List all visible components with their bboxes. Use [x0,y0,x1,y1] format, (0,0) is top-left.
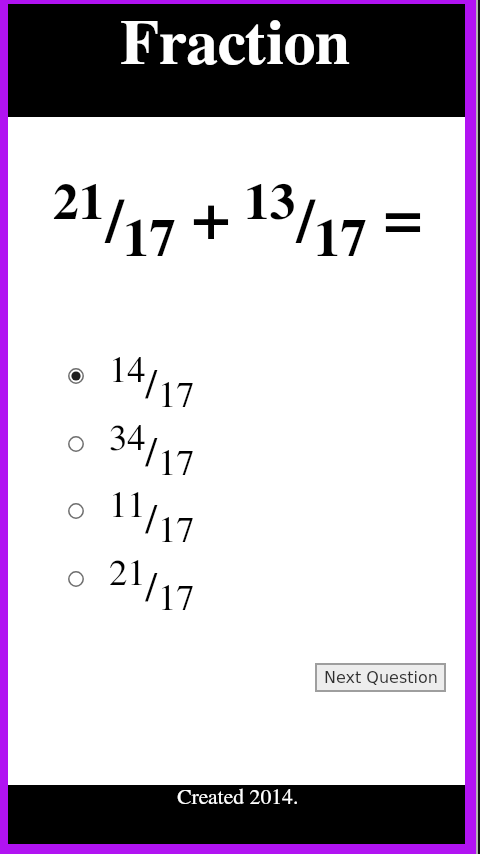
button[interactable]: 11 over 17 [60,491,212,549]
staticText: 17 [158,581,195,618]
staticText: / [145,432,158,474]
button[interactable]: 14 over 17 [60,356,212,414]
button[interactable]: 21 over 17 [60,559,212,617]
staticText: / [145,364,158,406]
staticText: / [106,192,124,254]
staticText: 13 [244,178,296,230]
staticText: 21 [109,556,146,593]
staticText: 17 [123,214,176,267]
staticText: / [145,499,158,541]
staticText: Created 2014. [177,787,299,809]
staticText: 17 [158,513,195,550]
staticText: + [190,188,232,250]
staticText: Fraction [120,13,351,76]
staticText: 11 [109,488,146,525]
staticText: / [145,567,158,609]
staticText: / [297,192,315,254]
staticText: 17 [314,214,367,267]
button[interactable]: Fraction [8,4,465,117]
button[interactable]: 34 over 17 [60,424,212,482]
staticText: = [382,188,424,250]
staticText: 21 [53,178,105,230]
staticText: 34 [109,421,146,458]
button[interactable]: Created 2014. [8,785,465,844]
staticText: 17 [158,378,195,415]
staticText: Next Question [324,668,438,687]
button[interactable]: Next Question [316,664,445,691]
staticText: 14 [109,353,146,390]
staticText: 17 [158,446,195,483]
